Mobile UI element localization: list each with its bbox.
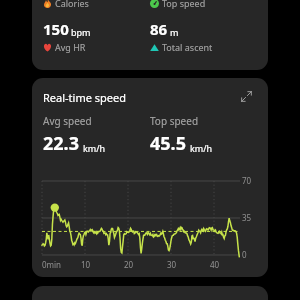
staticText: bpm bbox=[71, 26, 91, 38]
staticText: 86 bbox=[150, 19, 168, 39]
staticText: Top speed bbox=[150, 114, 199, 128]
staticText: km/h bbox=[83, 142, 106, 154]
staticText: Real-time speed bbox=[43, 90, 126, 105]
staticText: Avg HR bbox=[55, 41, 86, 53]
staticText: 70 bbox=[242, 175, 252, 186]
staticText: 45.5 bbox=[150, 131, 186, 156]
staticText: 150 bbox=[43, 19, 69, 39]
button[interactable]: 22.3 bbox=[43, 131, 106, 156]
staticText: 0min bbox=[42, 259, 62, 270]
staticText: Avg speed bbox=[43, 114, 92, 128]
staticText: Calories bbox=[55, 0, 89, 9]
button[interactable]: 45.5 bbox=[150, 131, 213, 156]
staticText: 30 bbox=[167, 259, 177, 270]
button[interactable]: 150 bbox=[43, 19, 147, 53]
staticText: 40 bbox=[210, 259, 220, 270]
staticText: m bbox=[170, 26, 179, 38]
staticText: 22.3 bbox=[43, 131, 79, 156]
staticText: Top speed bbox=[162, 0, 206, 9]
staticText: km/h bbox=[190, 142, 213, 154]
button[interactable]: 45.5 bbox=[150, 0, 254, 9]
staticText: 20 bbox=[124, 259, 134, 270]
staticText: 10 bbox=[81, 259, 91, 270]
button[interactable] bbox=[32, 286, 268, 300]
staticText: Total ascent bbox=[162, 41, 213, 53]
staticText: 0 bbox=[242, 249, 247, 260]
staticText: 35 bbox=[242, 212, 252, 223]
button[interactable]: Expand chart bbox=[235, 85, 257, 107]
button[interactable]: Real-time speed bbox=[43, 90, 126, 105]
button[interactable]: 832 bbox=[43, 0, 147, 9]
button[interactable]: 86 bbox=[150, 19, 254, 53]
